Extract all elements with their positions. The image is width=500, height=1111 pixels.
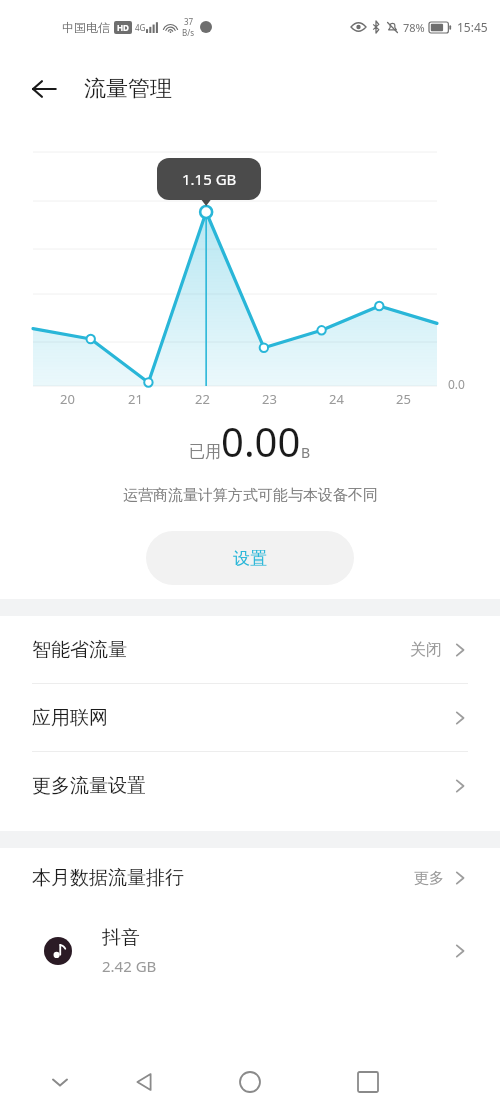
staticText: 20 [60, 390, 75, 408]
staticText: 流量管理 [84, 75, 172, 103]
staticText: 1.15 GB [182, 169, 237, 189]
staticText: B/s [182, 27, 195, 38]
button[interactable]: 更多流量设置 [0, 752, 500, 819]
staticText: B [301, 443, 311, 462]
staticText: 15:45 [457, 19, 488, 35]
staticText: 更多 [414, 869, 444, 888]
staticText: 2.42 GB [102, 956, 157, 976]
staticText: 24 [329, 390, 344, 408]
button[interactable]: Home [226, 1058, 274, 1106]
staticText: 0.0 [448, 376, 465, 392]
button[interactable]: Recents [344, 1058, 392, 1106]
staticText: 智能省流量 [32, 638, 127, 662]
staticText: 4G [135, 22, 146, 33]
button[interactable]: 抖音 [0, 908, 500, 994]
staticText: HD [117, 22, 129, 33]
staticText: 0.00 [221, 414, 301, 468]
staticText: 已用 [189, 442, 221, 462]
staticText: 运营商流量计算方式可能与本设备不同 [123, 486, 378, 505]
staticText: 抖音 [102, 926, 140, 950]
staticText: 21 [128, 390, 143, 408]
button[interactable]: 智能省流量 [0, 616, 500, 683]
staticText: 22 [195, 390, 210, 408]
button[interactable]: 本月数据流量排行 [0, 848, 500, 908]
staticText: 应用联网 [32, 706, 108, 730]
staticText: 关闭 [410, 640, 442, 660]
button[interactable]: Back [22, 67, 66, 111]
staticText: 37 [184, 16, 194, 27]
button[interactable]: Back [120, 1058, 168, 1106]
staticText: 本月数据流量排行 [32, 866, 184, 890]
staticText: 更多流量设置 [32, 774, 146, 798]
staticText: 23 [262, 390, 277, 408]
staticText: 设置 [233, 548, 267, 569]
button[interactable]: 应用联网 [0, 684, 500, 751]
staticText: 25 [396, 390, 411, 408]
staticText: 中国电信 [62, 20, 110, 35]
staticText: 78% [403, 20, 425, 35]
button[interactable]: 设置 [146, 531, 354, 585]
button[interactable]: Hide keyboard [40, 1062, 80, 1102]
